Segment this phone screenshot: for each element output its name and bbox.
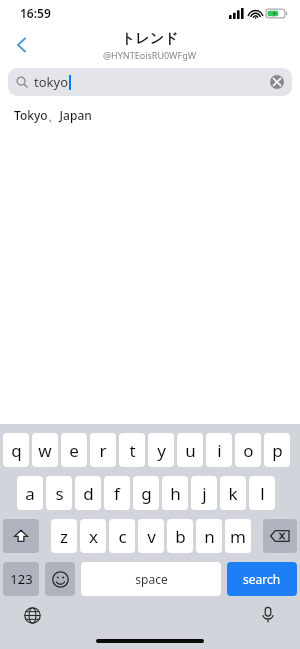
button[interactable]: Shift bbox=[3, 519, 39, 553]
staticText: t bbox=[129, 439, 136, 462]
staticText: l bbox=[260, 482, 265, 505]
button[interactable]: p bbox=[264, 433, 290, 467]
staticText: トレンド bbox=[121, 30, 179, 48]
staticText: c bbox=[118, 525, 127, 548]
staticText: n bbox=[204, 525, 215, 548]
button[interactable]: z bbox=[51, 519, 77, 553]
staticText: v bbox=[147, 525, 156, 548]
staticText: x bbox=[89, 525, 98, 548]
staticText: d bbox=[83, 482, 94, 505]
staticText: Tokyo、Japan bbox=[14, 107, 92, 123]
button[interactable]: k bbox=[220, 476, 246, 510]
button[interactable]: l bbox=[249, 476, 275, 510]
button[interactable]: c bbox=[109, 519, 135, 553]
staticText: e bbox=[69, 439, 79, 462]
button[interactable]: n bbox=[196, 519, 222, 553]
staticText: p bbox=[272, 439, 283, 462]
staticText: i bbox=[217, 439, 222, 462]
button[interactable]: Clear text bbox=[268, 73, 286, 91]
staticText: s bbox=[55, 482, 64, 505]
button[interactable]: Change keyboard bbox=[18, 601, 46, 629]
button[interactable]: b bbox=[167, 519, 193, 553]
staticText: b bbox=[175, 525, 186, 548]
staticText: search bbox=[243, 571, 281, 587]
button[interactable]: o bbox=[235, 433, 261, 467]
button[interactable]: space bbox=[81, 562, 221, 596]
button[interactable]: search bbox=[227, 562, 297, 596]
button[interactable]: w bbox=[32, 433, 58, 467]
staticText: 123 bbox=[10, 570, 33, 588]
staticText: y bbox=[157, 439, 166, 462]
staticText: z bbox=[60, 525, 68, 548]
button[interactable]: y bbox=[148, 433, 174, 467]
staticText: m bbox=[230, 525, 246, 548]
button[interactable]: s bbox=[46, 476, 72, 510]
button[interactable]: 123 bbox=[3, 562, 39, 596]
button[interactable]: Dictation bbox=[254, 601, 282, 629]
staticText: q bbox=[11, 439, 22, 462]
button[interactable]: a bbox=[17, 476, 43, 510]
staticText: h bbox=[170, 482, 181, 505]
staticText: r bbox=[99, 439, 107, 462]
staticText: 16:59 bbox=[20, 5, 51, 21]
button[interactable]: h bbox=[162, 476, 188, 510]
staticText: tokyo bbox=[34, 73, 68, 91]
button[interactable]: Emoji bbox=[45, 562, 75, 596]
button[interactable]: v bbox=[138, 519, 164, 553]
staticText: w bbox=[38, 439, 52, 462]
staticText: o bbox=[243, 439, 254, 462]
button[interactable]: r bbox=[90, 433, 116, 467]
button[interactable]: d bbox=[75, 476, 101, 510]
staticText: f bbox=[114, 482, 120, 505]
staticText: @HYNTEoisRU0WFgW bbox=[103, 49, 197, 61]
button[interactable]: e bbox=[61, 433, 87, 467]
button[interactable]: x bbox=[80, 519, 106, 553]
button[interactable]: j bbox=[191, 476, 217, 510]
button[interactable]: Delete bbox=[263, 519, 297, 553]
button[interactable]: i bbox=[206, 433, 232, 467]
button[interactable]: g bbox=[133, 476, 159, 510]
button[interactable]: Back bbox=[0, 26, 42, 64]
staticText: j bbox=[202, 482, 207, 505]
button[interactable]: m bbox=[225, 519, 251, 553]
staticText: k bbox=[228, 482, 238, 505]
button[interactable]: q bbox=[3, 433, 29, 467]
button[interactable]: t bbox=[119, 433, 145, 467]
button[interactable]: Tokyo、Japan bbox=[0, 100, 300, 130]
staticText: a bbox=[25, 482, 35, 505]
staticText: space bbox=[135, 571, 168, 587]
staticText: u bbox=[185, 439, 196, 462]
button[interactable]: tokyo bbox=[8, 68, 292, 96]
button[interactable]: u bbox=[177, 433, 203, 467]
staticText: g bbox=[141, 482, 152, 505]
button[interactable]: f bbox=[104, 476, 130, 510]
